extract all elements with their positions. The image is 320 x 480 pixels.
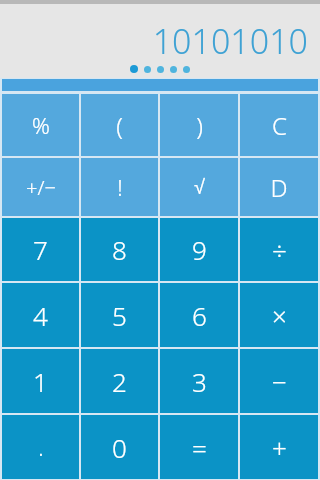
button[interactable]: 6 — [160, 283, 238, 347]
staticText: ÷ — [272, 232, 287, 267]
button[interactable]: ( — [81, 94, 158, 156]
button[interactable]: . — [2, 415, 79, 479]
button[interactable]: Page 5 — [183, 66, 190, 73]
button[interactable]: 3 — [160, 349, 238, 413]
button[interactable]: ) — [160, 94, 238, 156]
button[interactable]: ! — [81, 158, 158, 216]
staticText: 1 — [33, 364, 48, 399]
staticText: = — [192, 430, 207, 465]
button[interactable]: 8 — [81, 218, 158, 281]
button[interactable]: Page 2 — [144, 66, 151, 73]
button[interactable]: Page 1 — [130, 65, 138, 73]
staticText: 8 — [112, 232, 127, 267]
button[interactable]: 1 — [2, 349, 79, 413]
button[interactable]: 4 — [2, 283, 79, 347]
staticText: − — [272, 364, 287, 399]
staticText: 4 — [33, 298, 48, 333]
staticText: 0 — [112, 430, 127, 465]
staticText: 10101010 — [0, 18, 308, 64]
staticText: + — [272, 430, 287, 465]
button[interactable]: 5 — [81, 283, 158, 347]
staticText: 5 — [112, 298, 127, 333]
staticText: . — [38, 432, 44, 462]
button[interactable]: 2 — [81, 349, 158, 413]
button[interactable]: × — [240, 283, 318, 347]
button[interactable]: C — [240, 94, 318, 156]
button[interactable]: D — [240, 158, 318, 216]
button[interactable]: Page 4 — [170, 66, 177, 73]
button[interactable]: ÷ — [240, 218, 318, 281]
staticText: +/− — [26, 174, 56, 201]
button[interactable]: 7 — [2, 218, 79, 281]
button[interactable]: = — [160, 415, 238, 479]
staticText: 3 — [192, 364, 207, 399]
staticText: D — [270, 171, 288, 204]
staticText: 6 — [192, 298, 207, 333]
staticText: 2 — [112, 364, 127, 399]
button[interactable]: 9 — [160, 218, 238, 281]
button[interactable]: % — [2, 94, 79, 156]
staticText: ! — [117, 172, 123, 202]
button[interactable]: 0 — [81, 415, 158, 479]
button[interactable]: +/− — [2, 158, 79, 216]
button[interactable]: √ — [160, 158, 238, 216]
button[interactable]: + — [240, 415, 318, 479]
button[interactable]: Page 3 — [157, 66, 164, 73]
button[interactable]: − — [240, 349, 318, 413]
staticText: ( — [116, 109, 123, 142]
staticText: C — [272, 109, 287, 142]
staticText: √ — [194, 176, 205, 198]
staticText: × — [272, 298, 287, 333]
staticText: 9 — [192, 232, 207, 267]
staticText: ) — [196, 109, 203, 142]
staticText: % — [32, 110, 50, 140]
staticText: 7 — [33, 232, 48, 267]
